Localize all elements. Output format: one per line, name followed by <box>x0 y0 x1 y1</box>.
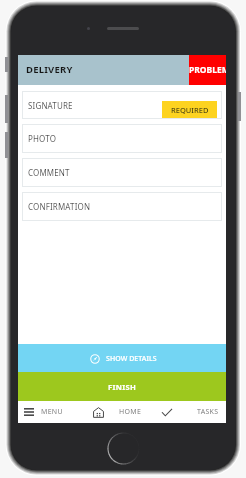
staticText: MENU <box>41 407 63 417</box>
staticText: SIGNATURE <box>28 100 73 111</box>
staticText: CONFIRMATION <box>28 201 91 212</box>
button[interactable]: Home <box>88 401 158 423</box>
button[interactable]: Show details <box>18 344 226 372</box>
staticText: DELIVERY <box>26 63 73 76</box>
staticText: SHOW DETAILS <box>106 354 157 364</box>
button[interactable]: PHOTO <box>22 124 222 153</box>
button[interactable]: FINISH <box>18 372 226 401</box>
other: Home button <box>107 432 140 465</box>
staticText: TASKS <box>197 407 219 417</box>
button[interactable]: COMMENT <box>22 158 222 187</box>
staticText: PHOTO <box>28 133 57 144</box>
staticText: REQUIRED <box>171 105 209 115</box>
staticText: PROBLEM <box>189 64 226 76</box>
button[interactable]: PROBLEM <box>189 55 226 85</box>
other: Show details <box>90 354 100 364</box>
staticText: HOME <box>119 407 142 417</box>
button[interactable]: Tasks <box>158 401 226 423</box>
staticText: FINISH <box>108 382 137 392</box>
other: Menu <box>24 408 34 416</box>
button[interactable]: SIGNATURE <box>22 91 222 119</box>
button[interactable]: Menu <box>18 401 88 423</box>
staticText: COMMENT <box>28 167 70 178</box>
other: Tasks <box>162 409 172 416</box>
other: Home <box>93 407 104 418</box>
button[interactable]: CONFIRMATION <box>22 192 222 221</box>
